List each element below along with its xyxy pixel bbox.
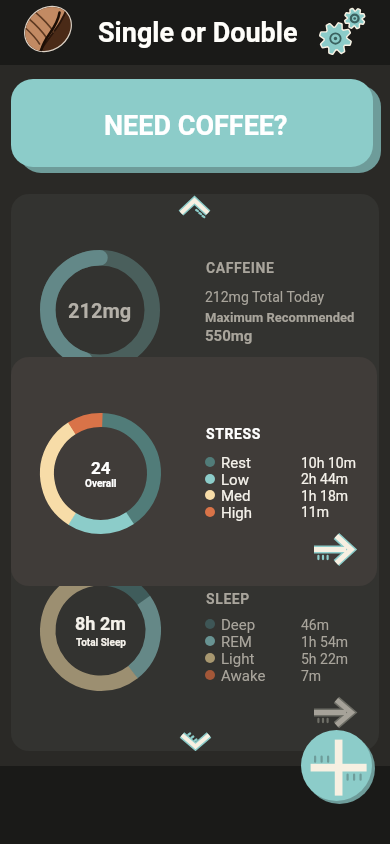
- button[interactable]: Scroll down: [180, 732, 211, 751]
- staticText: 8h 2m: [75, 613, 126, 634]
- button[interactable]: Sleep details: [314, 697, 354, 728]
- staticText: Low: [221, 471, 249, 489]
- button[interactable]: Scroll up: [179, 196, 210, 216]
- button[interactable]: Stress details: [314, 533, 354, 566]
- staticText: 5h 22m: [301, 651, 349, 667]
- staticText: SLEEP: [206, 591, 250, 607]
- staticText: Awake: [221, 667, 266, 685]
- staticText: Med: [221, 487, 251, 505]
- staticText: 1h 18m: [301, 488, 349, 504]
- staticText: REM: [221, 633, 252, 651]
- staticText: 46m: [301, 617, 330, 633]
- staticText: Total Sleep: [76, 637, 126, 649]
- staticText: 212mg: [68, 299, 132, 322]
- staticText: CAFFEINE: [206, 260, 275, 276]
- staticText: Maximum Recommended: [205, 310, 355, 325]
- button[interactable]: Settings: [313, 1, 373, 61]
- staticText: Deep: [221, 616, 256, 634]
- staticText: Single or Double: [98, 17, 298, 49]
- staticText: 212mg Total Today: [205, 289, 325, 305]
- staticText: 10h 10m: [301, 455, 356, 471]
- staticText: Overall: [85, 478, 117, 490]
- staticText: 11m: [301, 504, 330, 520]
- button[interactable]: 24: [11, 357, 377, 586]
- staticText: Rest: [221, 454, 251, 472]
- button[interactable]: Add: [301, 730, 372, 801]
- staticText: NEED COFFEE?: [104, 110, 288, 142]
- button[interactable]: NEED COFFEE?: [11, 79, 373, 167]
- staticText: STRESS: [206, 426, 261, 442]
- staticText: 7m: [301, 668, 322, 684]
- staticText: 2h 44m: [301, 471, 349, 487]
- staticText: 24: [91, 458, 111, 478]
- staticText: Light: [221, 650, 255, 668]
- staticText: High: [221, 504, 253, 522]
- staticText: 550mg: [205, 327, 253, 345]
- staticText: 1h 54m: [301, 634, 349, 650]
